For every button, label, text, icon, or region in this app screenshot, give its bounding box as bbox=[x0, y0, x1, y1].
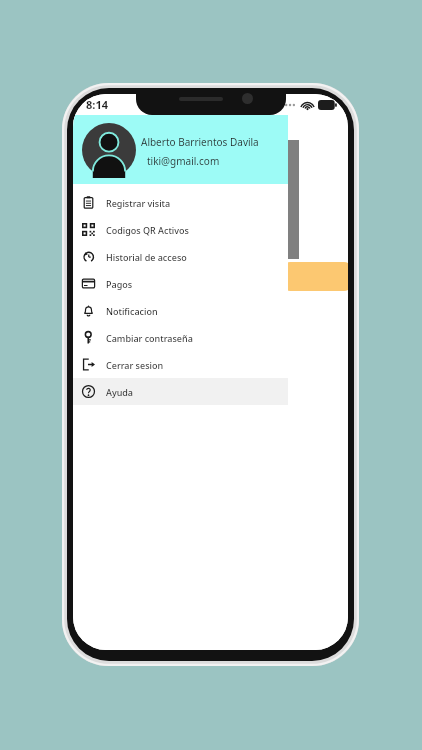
staticText: Codigos QR Activos bbox=[106, 224, 189, 236]
staticText: Historial de acceso bbox=[106, 251, 187, 263]
staticText: tiki@gmail.com bbox=[147, 154, 220, 168]
staticText: Cerrar sesion bbox=[106, 359, 164, 371]
staticText: Notificacion bbox=[106, 305, 158, 317]
button[interactable]: Registrar visita bbox=[73, 189, 288, 216]
staticText: Pagos bbox=[106, 278, 133, 290]
button[interactable]: Notificacion bbox=[73, 297, 288, 324]
staticText: Alberto Barrientos Davila bbox=[141, 135, 259, 149]
button[interactable]: Ayuda bbox=[73, 378, 288, 405]
button[interactable] bbox=[282, 262, 348, 291]
staticText: Cambiar contraseña bbox=[106, 332, 193, 344]
button[interactable]: Alberto Barrientos Davila bbox=[73, 115, 288, 184]
button[interactable]: Pagos bbox=[73, 270, 288, 297]
button[interactable]: Cambiar contraseña bbox=[73, 324, 288, 351]
staticText: Ayuda bbox=[106, 386, 134, 398]
staticText: Registrar visita bbox=[106, 197, 171, 209]
staticText: 8:14 bbox=[86, 97, 108, 112]
button[interactable]: Cerrar sesion bbox=[73, 351, 288, 378]
button[interactable]: Codigos QR Activos bbox=[73, 216, 288, 243]
button[interactable]: Historial de acceso bbox=[73, 243, 288, 270]
